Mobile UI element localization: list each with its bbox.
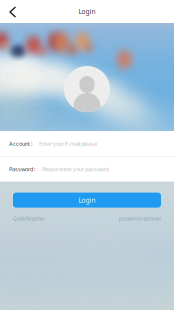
staticText: Enter your E-mail please <box>39 140 97 147</box>
button[interactable]: Back <box>0 0 28 23</box>
button[interactable]: Login <box>13 193 161 208</box>
staticText: Password : <box>9 165 36 173</box>
staticText: password retrieval <box>119 216 161 222</box>
staticText: Login <box>78 7 95 16</box>
button[interactable]: password retrieval <box>119 216 161 222</box>
button[interactable]: Quick Register <box>13 216 45 222</box>
staticText: Quick Register <box>13 216 45 222</box>
staticText: Login <box>78 196 95 205</box>
staticText: Please enter your password <box>42 165 109 173</box>
staticText: Account : <box>9 140 33 147</box>
